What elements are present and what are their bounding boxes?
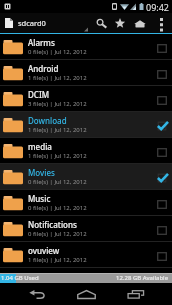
button[interactable]: media (0, 138, 172, 163)
staticText: 1 file(s) | Jul 12, 2012 (28, 74, 87, 82)
button[interactable]: Download (0, 112, 172, 137)
staticText: media (28, 141, 52, 152)
staticText: ovuview (28, 245, 60, 256)
button[interactable]: Select Alarms (148, 34, 172, 59)
staticText: 12.28 GB Available (116, 274, 169, 282)
staticText: Android (28, 63, 59, 74)
button[interactable]: Music (0, 190, 172, 215)
button[interactable]: Select Music (148, 190, 172, 215)
staticText: 1 file(s) | Jul 12, 2012 (28, 256, 87, 264)
staticText: sdcard0 (18, 18, 46, 28)
staticText: Notifications (28, 219, 77, 230)
button[interactable]: Select DCIM (148, 86, 172, 111)
button[interactable]: Select Download (148, 112, 172, 137)
staticText: Download (28, 115, 67, 126)
staticText: Music (28, 193, 51, 204)
staticText: 3 file(s) | Jul 12, 2012 (28, 100, 87, 108)
button[interactable]: Select Android (148, 60, 172, 85)
button[interactable]: Bookmarks (110, 13, 129, 33)
button[interactable]: Home (62, 283, 111, 305)
staticText: 1 file(s) | Jul 12, 2012 (28, 126, 87, 134)
button[interactable]: ovuview (0, 242, 172, 267)
staticText: 09:42 (146, 1, 170, 13)
staticText: 1 file(s) | Jul 12, 2012 (28, 152, 87, 160)
button[interactable]: Notifications (0, 216, 172, 241)
staticText: 0 file(s) | Jul 12, 2012 (28, 178, 87, 186)
button[interactable]: Search (93, 13, 110, 33)
staticText: 0 file(s) | Jul 12, 2012 (28, 230, 87, 238)
staticText: Movies (28, 167, 55, 178)
staticText: Alarms (28, 37, 55, 48)
button[interactable]: Select media (148, 138, 172, 163)
button[interactable]: Select Notifications (148, 216, 172, 241)
button[interactable]: More options (151, 13, 172, 33)
staticText: 1.04 GB Used (1, 274, 39, 282)
button[interactable]: Recent apps (111, 283, 160, 305)
button[interactable]: Home folder (129, 13, 151, 33)
button[interactable]: Alarms (0, 34, 172, 59)
staticText: DCIM (28, 89, 50, 100)
button[interactable]: Back (12, 283, 62, 305)
button[interactable]: Select Movies (148, 164, 172, 189)
staticText: 0 file(s) | Jul 12, 2012 (28, 48, 87, 56)
button[interactable]: Android (0, 60, 172, 85)
button[interactable]: Select ovuview (148, 242, 172, 267)
button[interactable]: Movies (0, 164, 172, 189)
button[interactable]: DCIM (0, 86, 172, 111)
button[interactable]: sdcard0 (0, 13, 50, 33)
staticText: 0 file(s) | Jul 12, 2012 (28, 204, 87, 212)
